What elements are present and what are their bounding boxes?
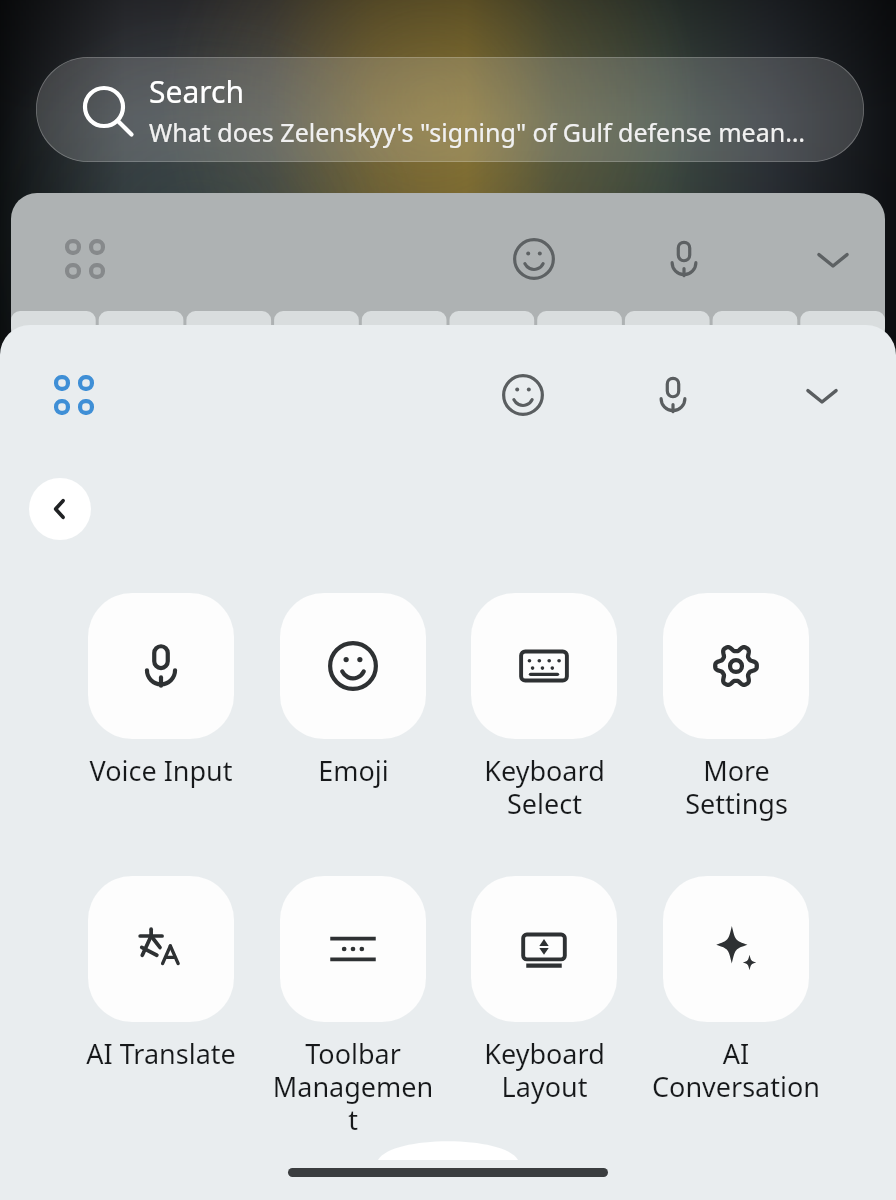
staticText: More Settings (685, 752, 788, 822)
button[interactable]: Hide keyboard (786, 359, 858, 431)
staticText: Search (149, 71, 244, 112)
button[interactable]: Search (36, 57, 864, 162)
button[interactable]: Hide keyboard (797, 223, 869, 295)
button[interactable]: Toolbar grid (38, 359, 110, 431)
staticText: Toolbar Management (269, 1035, 437, 1138)
button[interactable]: Voice Input (77, 593, 245, 789)
button[interactable]: Toolbar Management (269, 876, 437, 1138)
button[interactable]: Voice input (637, 359, 709, 431)
button[interactable]: Emoji (498, 223, 570, 295)
button[interactable]: Keyboard Layout (460, 876, 628, 1105)
button[interactable]: Emoji (487, 359, 559, 431)
staticText: What does Zelenskyy's "signing" of Gulf … (149, 115, 805, 149)
staticText: Voice Input (89, 752, 233, 789)
staticText: AI Translate (86, 1035, 236, 1072)
staticText: AI Conversation (652, 1035, 820, 1105)
button[interactable]: Emoji (269, 593, 437, 789)
button[interactable]: Toolbar grid (49, 223, 121, 295)
button[interactable]: Voice input (648, 223, 720, 295)
button[interactable]: AI Conversation (652, 876, 820, 1105)
button[interactable]: More Settings (652, 593, 820, 822)
button[interactable]: Keyboard Select (460, 593, 628, 822)
staticText: Keyboard Layout (484, 1035, 605, 1105)
button[interactable]: Back (29, 478, 91, 540)
staticText: Emoji (318, 752, 389, 789)
staticText: Keyboard Select (484, 752, 605, 822)
button[interactable]: AI Translate (77, 876, 245, 1072)
